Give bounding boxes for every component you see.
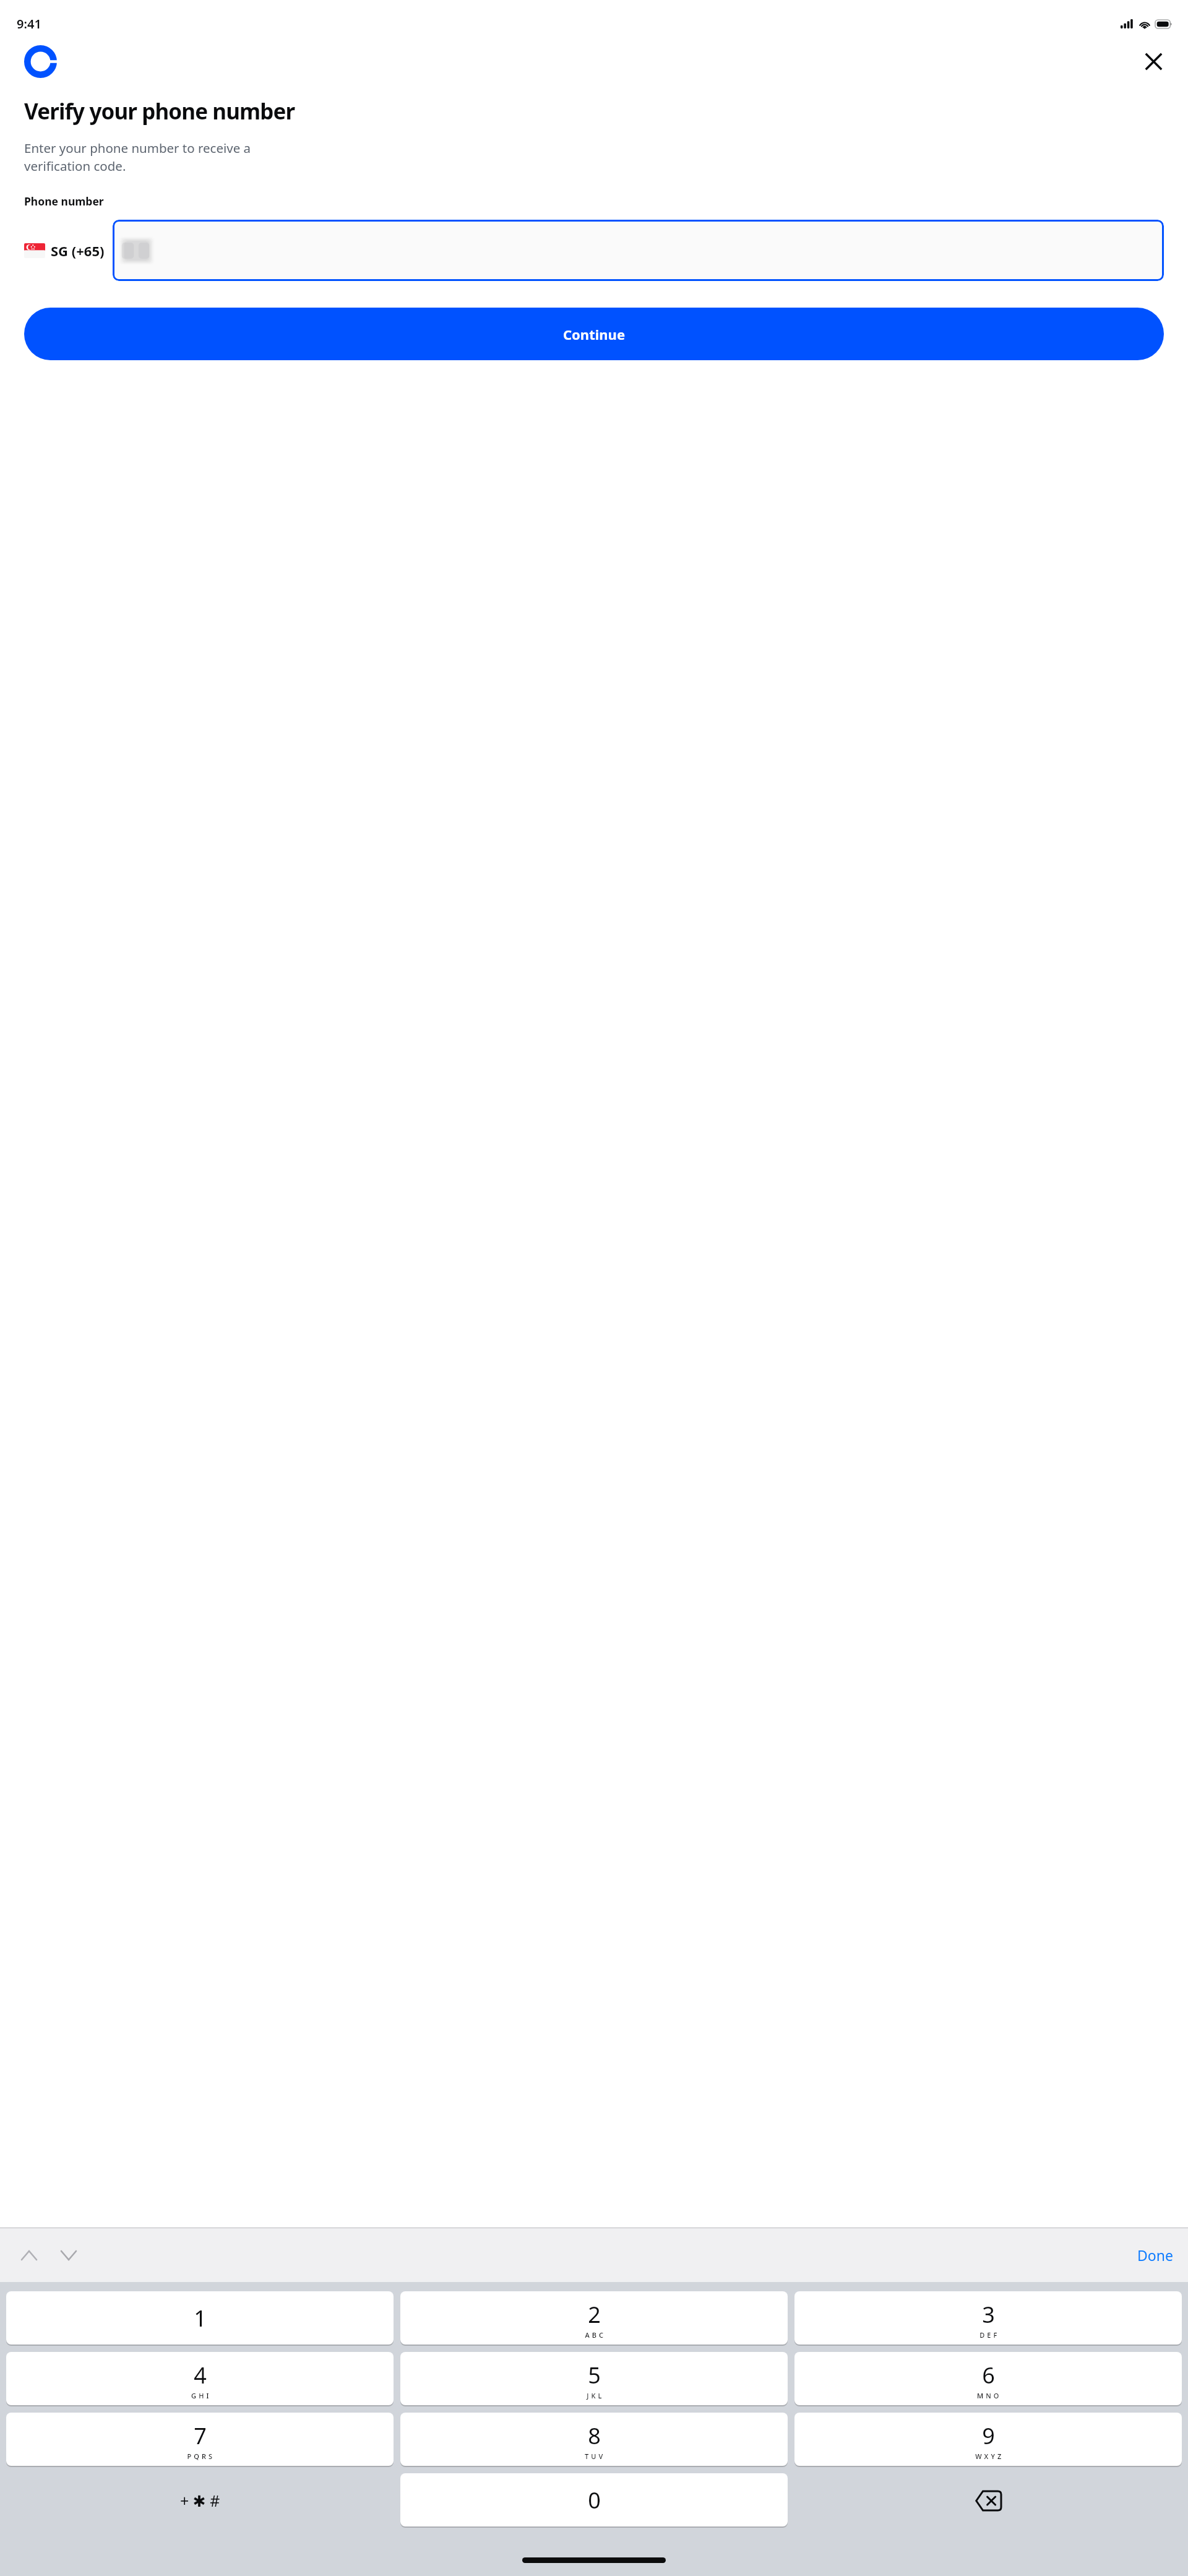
staticText: Phone number <box>24 194 104 209</box>
button[interactable]: 6 <box>794 2352 1182 2405</box>
staticText: Done <box>1137 2245 1173 2265</box>
button[interactable]: 8 <box>400 2413 788 2466</box>
staticText: W X Y Z <box>975 2452 1002 2461</box>
staticText: 6 <box>982 2360 995 2390</box>
staticText: Continue <box>563 325 626 344</box>
button[interactable]: 7 <box>6 2413 394 2466</box>
staticText: Enter your phone number to receive a ver… <box>24 139 251 175</box>
staticText: 1 <box>194 2303 207 2333</box>
button[interactable]: 1 <box>6 2291 394 2345</box>
staticText: 5 <box>588 2360 601 2390</box>
button[interactable]: 9 <box>794 2413 1182 2466</box>
button[interactable]: 3 <box>794 2291 1182 2345</box>
button[interactable]: Next field <box>52 2239 85 2272</box>
staticText: SG (+65) <box>51 241 105 260</box>
staticText: 2 <box>588 2299 601 2330</box>
button[interactable]: Close <box>1140 48 1167 75</box>
staticText: J K L <box>587 2391 602 2400</box>
button[interactable]: Phone number input <box>113 220 1164 281</box>
button[interactable]: Backspace <box>794 2473 1182 2528</box>
button[interactable]: 0 <box>400 2473 788 2526</box>
button[interactable]: Done <box>1130 2241 1181 2270</box>
button[interactable]: Continue <box>24 308 1164 360</box>
staticText: 7 <box>194 2421 207 2451</box>
staticText: 9 <box>982 2421 995 2451</box>
staticText: 4 <box>194 2360 207 2390</box>
button[interactable]: 5 <box>400 2352 788 2405</box>
button[interactable]: Symbols <box>6 2473 394 2528</box>
staticText: Verify your phone number <box>24 97 295 126</box>
staticText: 8 <box>588 2421 601 2451</box>
staticText: P Q R S <box>187 2452 213 2461</box>
button[interactable]: Coinbase logo <box>24 45 57 78</box>
staticText: 9:41 <box>17 15 41 32</box>
staticText: 3 <box>982 2299 995 2330</box>
button[interactable]: Previous field <box>12 2239 46 2272</box>
staticText: T U V <box>585 2452 603 2461</box>
button[interactable]: 2 <box>400 2291 788 2345</box>
staticText: 0 <box>588 2485 601 2515</box>
staticText: M N O <box>977 2391 999 2400</box>
staticText: D E F <box>979 2330 997 2340</box>
button[interactable]: SG (+65) <box>24 241 108 260</box>
staticText: A B C <box>585 2330 604 2340</box>
staticText: + ✱ # <box>180 2490 220 2511</box>
staticText: G H I <box>191 2391 209 2400</box>
button[interactable]: 4 <box>6 2352 394 2405</box>
